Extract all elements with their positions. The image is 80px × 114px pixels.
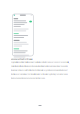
staticText: Anyone can: The first firewall [11, 58, 32, 60]
staticText: So, what is it about? It starts with peo… [11, 61, 69, 79]
